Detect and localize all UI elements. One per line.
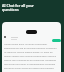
- staticText: AI Chat for all your questions: [2, 3, 34, 12]
- button[interactable]: [52, 39, 61, 42]
- staticText: Lorem ipsum dolor sit amet consectetur a…: [4, 43, 58, 72]
- button[interactable]: [26, 30, 37, 34]
